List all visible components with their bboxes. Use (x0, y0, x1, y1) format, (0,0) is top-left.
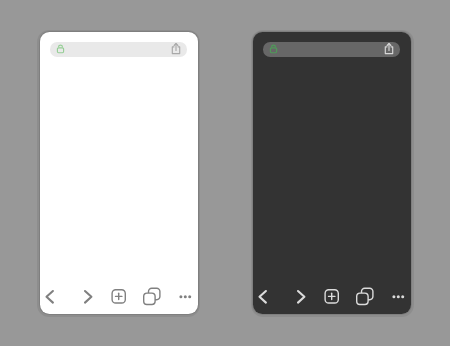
button[interactable] (40, 287, 60, 307)
button[interactable] (263, 42, 400, 57)
button[interactable] (50, 42, 187, 57)
button[interactable] (78, 287, 98, 307)
button[interactable] (175, 287, 195, 307)
button[interactable] (355, 287, 375, 307)
button[interactable] (109, 287, 129, 307)
button[interactable] (291, 287, 311, 307)
button[interactable] (388, 287, 408, 307)
button[interactable] (142, 287, 162, 307)
button[interactable] (322, 287, 342, 307)
button[interactable] (253, 287, 273, 307)
